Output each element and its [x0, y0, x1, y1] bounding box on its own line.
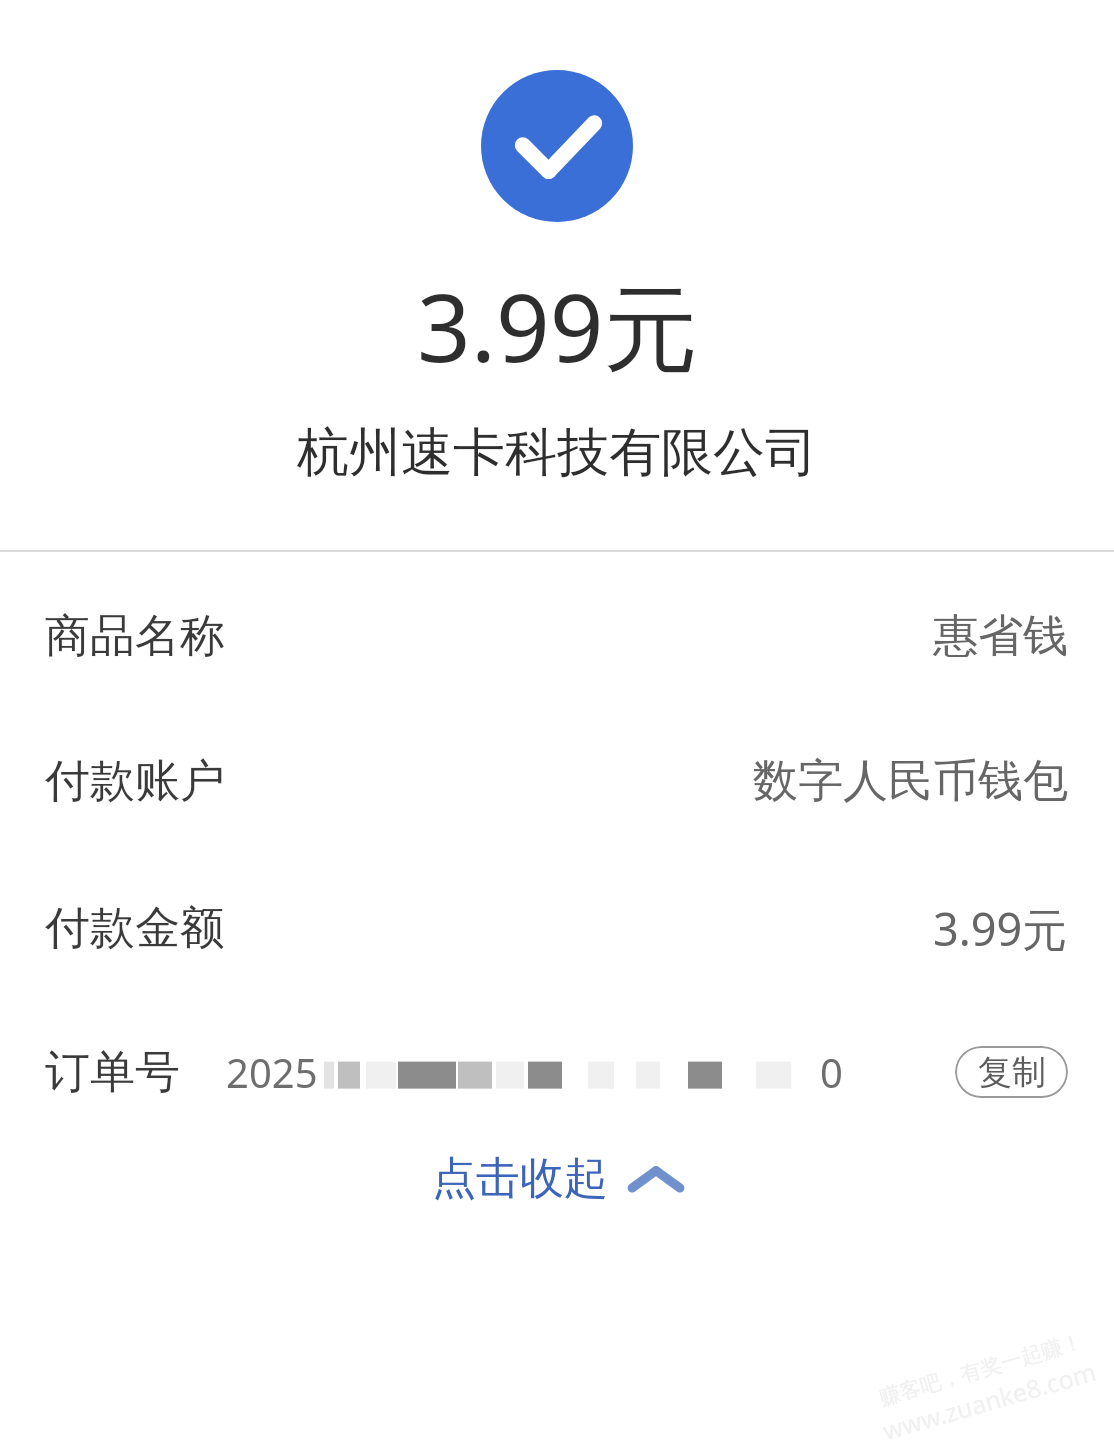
staticText: 3.99元 [417, 262, 698, 390]
staticText: 0 [820, 1045, 843, 1099]
staticText: 2025 [226, 1045, 318, 1099]
staticText: 惠省钱 [933, 608, 1068, 665]
staticText: 付款金额 [45, 900, 225, 957]
button[interactable]: 商品名称 [0, 608, 1114, 665]
staticText: 订单号 [45, 1044, 180, 1101]
other: Payment successful [481, 70, 633, 222]
staticText: 数字人民币钱包 [753, 753, 1068, 810]
button[interactable]: 点击收起 [414, 1141, 700, 1216]
staticText: www.zuanke8.com [878, 1354, 1100, 1440]
staticText: 商品名称 [45, 608, 225, 665]
button[interactable]: 复制 [955, 1046, 1068, 1098]
button[interactable]: 付款金额 [0, 898, 1114, 959]
staticText: 付款账户 [45, 753, 225, 810]
staticText: 杭州速卡科技有限公司 [297, 420, 817, 486]
staticText: 复制 [978, 1051, 1046, 1094]
staticText: 点击收起 [432, 1151, 608, 1206]
staticText: 赚客吧，有奖一起赚！ [876, 1328, 1085, 1411]
button[interactable]: 付款账户 [0, 753, 1114, 810]
staticText: 3.99元 [933, 898, 1068, 959]
